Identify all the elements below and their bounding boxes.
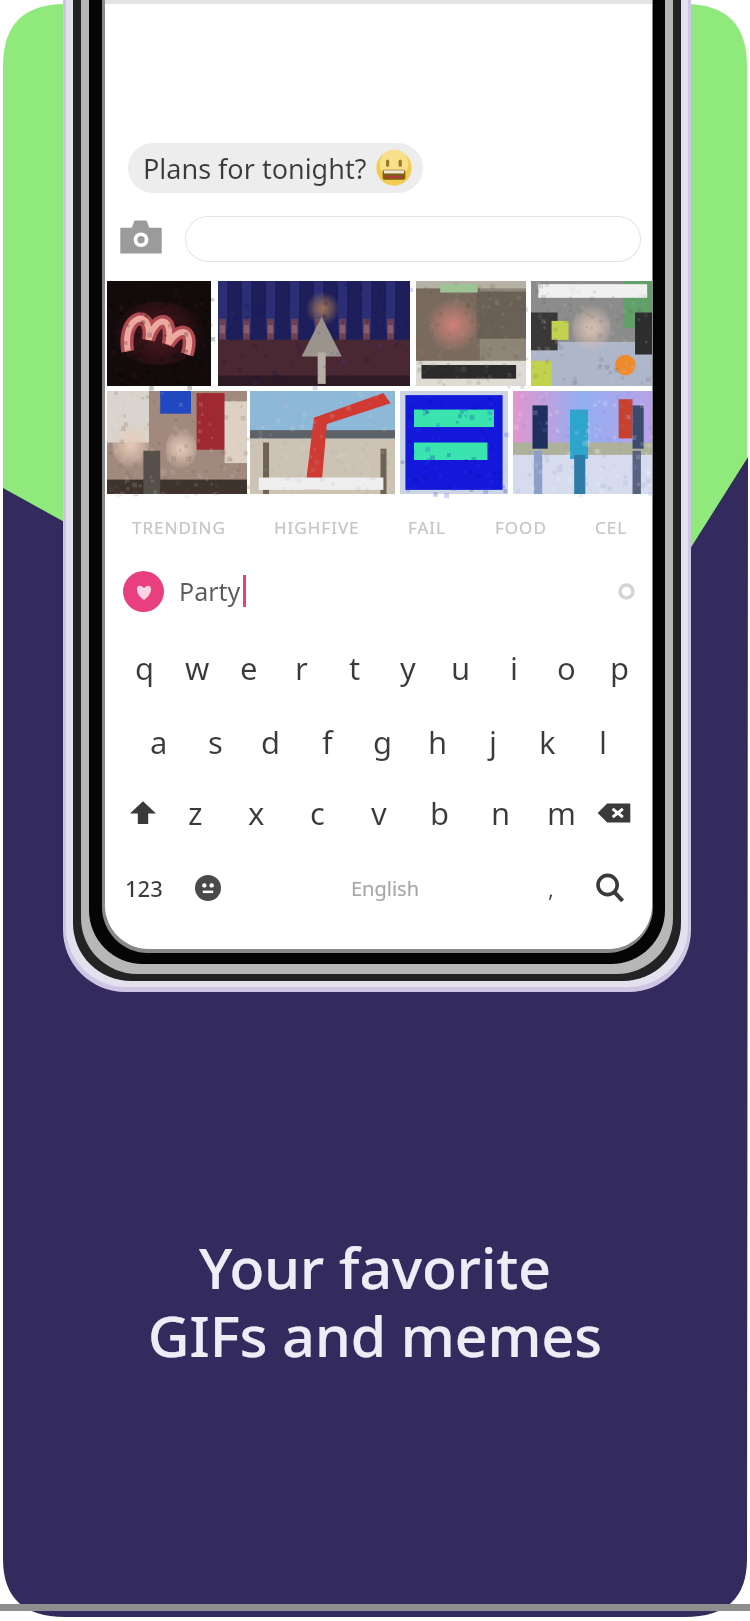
button[interactable] — [531, 281, 652, 386]
button[interactable]: o — [540, 647, 593, 689]
button[interactable]: s — [187, 721, 243, 763]
staticText: w — [185, 647, 210, 689]
staticText: FAIL — [408, 516, 447, 539]
staticText: Party — [179, 574, 241, 608]
button[interactable]: FAIL — [384, 505, 471, 549]
staticText: e — [240, 647, 258, 689]
button[interactable]: u — [434, 647, 487, 689]
button[interactable]: t — [328, 647, 381, 689]
button[interactable]: HIGHFIVE — [250, 505, 384, 549]
button[interactable]: d — [243, 721, 299, 763]
button[interactable]: Emoji — [193, 873, 223, 903]
staticText: Plans for tonight? — [143, 150, 367, 187]
staticText: r — [295, 647, 308, 689]
button[interactable]: 123 — [119, 867, 169, 909]
button[interactable]: p — [593, 647, 646, 689]
button[interactable] — [250, 391, 395, 494]
button[interactable]: Clear — [614, 579, 638, 603]
button[interactable]: CELEB — [571, 505, 652, 549]
staticText: t — [349, 647, 361, 689]
staticText: GIFs and memes — [148, 1296, 602, 1374]
button[interactable]: i — [487, 647, 540, 689]
button[interactable]: y — [381, 647, 434, 689]
staticText: English — [351, 875, 420, 902]
staticText: j — [489, 721, 497, 763]
staticText: s — [208, 721, 223, 763]
staticText: HIGHFIVE — [274, 516, 360, 539]
staticText: n — [491, 792, 511, 834]
staticText: m — [547, 792, 576, 834]
button[interactable] — [400, 391, 508, 494]
button[interactable] — [185, 216, 641, 262]
staticText: y — [400, 647, 416, 689]
button[interactable]: Shift — [121, 791, 165, 835]
button[interactable]: k — [520, 721, 575, 763]
staticText: Your favorite — [199, 1228, 551, 1306]
button[interactable]: r — [275, 647, 328, 689]
button[interactable] — [107, 391, 247, 494]
staticText: TRENDING — [132, 516, 226, 539]
staticText: k — [539, 721, 556, 763]
button[interactable]: n — [470, 792, 531, 834]
button[interactable]: a — [131, 721, 187, 763]
button[interactable]: w — [171, 647, 223, 689]
staticText: f — [322, 721, 333, 763]
button[interactable]: Search — [590, 868, 630, 908]
staticText: l — [599, 721, 607, 763]
staticText: 123 — [125, 873, 163, 903]
button[interactable]: x — [226, 792, 287, 834]
button[interactable]: e — [223, 647, 275, 689]
button[interactable]: m — [531, 792, 592, 834]
button[interactable]: z — [165, 792, 226, 834]
button[interactable]: FOOD — [471, 505, 571, 549]
button[interactable] — [513, 391, 652, 494]
button[interactable]: Camera — [117, 213, 165, 261]
button[interactable]: h — [410, 721, 465, 763]
staticText: FOOD — [495, 516, 547, 539]
staticText: a — [150, 721, 168, 763]
staticText: u — [451, 647, 471, 689]
button[interactable] — [107, 281, 211, 386]
staticText: x — [248, 792, 265, 834]
button[interactable]: q — [119, 647, 171, 689]
button[interactable] — [218, 281, 410, 386]
button[interactable]: TRENDING — [108, 505, 250, 549]
button[interactable]: v — [348, 792, 409, 834]
button[interactable]: f — [299, 721, 355, 763]
button[interactable] — [416, 281, 526, 386]
staticText: g — [373, 721, 393, 763]
button[interactable]: g — [355, 721, 410, 763]
button[interactable]: j — [465, 721, 520, 763]
staticText: q — [135, 647, 155, 689]
staticText: b — [430, 792, 450, 834]
button[interactable]: Favorites — [123, 571, 164, 612]
staticText: p — [610, 647, 630, 689]
staticText: i — [510, 647, 518, 689]
button[interactable]: Backspace — [592, 791, 636, 835]
staticText: o — [557, 647, 576, 689]
staticText: v — [371, 792, 387, 834]
staticText: c — [310, 792, 325, 834]
button[interactable]: c — [287, 792, 348, 834]
staticText: , — [548, 873, 554, 903]
staticText: z — [188, 792, 203, 834]
staticText: d — [261, 721, 281, 763]
staticText: CELEB — [595, 516, 628, 539]
button[interactable]: b — [409, 792, 470, 834]
button[interactable]: Plans for tonight? — [128, 143, 423, 193]
staticText: h — [428, 721, 448, 763]
button[interactable]: l — [575, 721, 630, 763]
